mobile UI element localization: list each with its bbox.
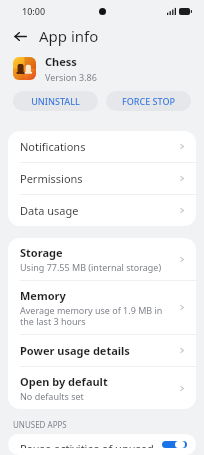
button[interactable]: Back: [9, 25, 31, 47]
staticText: Notifications: [20, 139, 178, 154]
button[interactable]: UNINSTALL: [13, 91, 98, 111]
button[interactable]: Pause activities of unused apps: [8, 434, 196, 455]
button[interactable]: Notifications: [8, 131, 196, 162]
staticText: Version 3.86: [45, 71, 97, 83]
staticText: Chess: [45, 54, 77, 69]
staticText: Average memory use of 1.9 MB in the last…: [20, 304, 173, 327]
button[interactable]: Memory: [8, 281, 196, 334]
staticText: Storage: [20, 245, 63, 260]
staticText: 10:00: [22, 5, 46, 17]
staticText: UNINSTALL: [31, 95, 80, 107]
staticText: Power usage details: [20, 343, 178, 358]
staticText: App info: [39, 26, 99, 46]
button[interactable]: FORCE STOP: [106, 91, 191, 111]
button[interactable]: Data usage: [8, 195, 196, 226]
button[interactable]: Storage: [8, 238, 196, 280]
staticText: Memory: [20, 288, 66, 303]
staticText: Pause activities of unused apps: [20, 441, 162, 448]
staticText: Permissions: [20, 171, 178, 186]
button[interactable]: Permissions: [8, 163, 196, 194]
staticText: No defaults set: [20, 390, 84, 402]
button[interactable]: Power usage details: [8, 335, 196, 366]
staticText: Open by default: [20, 374, 108, 389]
staticText: Data usage: [20, 203, 178, 218]
staticText: Using 77.55 MB (internal storage): [20, 261, 162, 273]
staticText: FORCE STOP: [122, 95, 175, 107]
staticText: UNUSED APPS: [13, 419, 67, 430]
button[interactable]: Pause activities of unused apps: [162, 441, 187, 448]
button[interactable]: Open by default: [8, 367, 196, 409]
